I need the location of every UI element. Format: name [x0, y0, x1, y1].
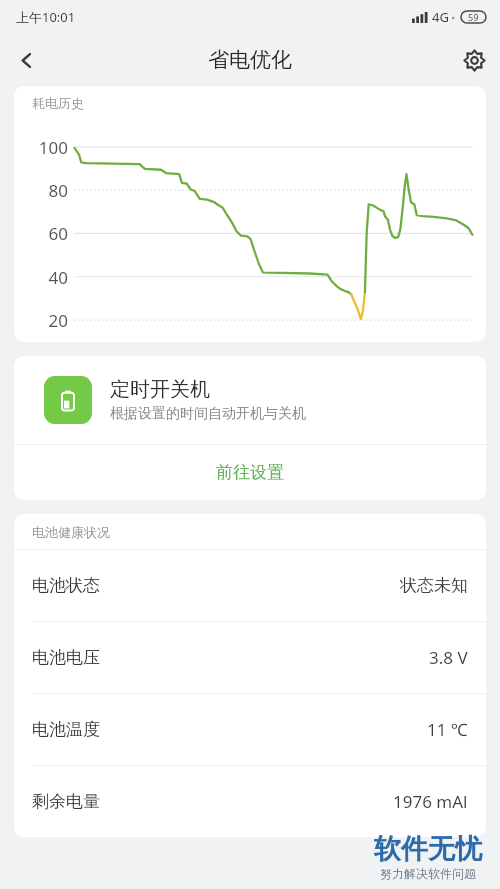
staticText: 59 — [468, 11, 479, 23]
button[interactable]: 剩余电量 — [14, 766, 486, 837]
staticText: 上午10:01 — [16, 8, 76, 26]
button[interactable]: 电池温度 — [14, 694, 486, 766]
staticText: 11 ℃ — [427, 718, 468, 741]
staticText: 1976 mAl — [393, 790, 468, 813]
staticText: 3.8 V — [429, 646, 468, 669]
staticText: 4G — [432, 8, 449, 26]
staticText: 状态未知 — [400, 575, 468, 596]
button[interactable]: 定时开关机 — [14, 356, 486, 444]
staticText: 前往设置 — [216, 462, 284, 483]
staticText: 电池电压 — [32, 647, 100, 668]
staticText: 40 — [24, 266, 68, 288]
staticText: 剩余电量 — [32, 791, 100, 812]
staticText: 60 — [24, 222, 68, 244]
button[interactable]: 电池状态 — [14, 550, 486, 622]
button[interactable]: Settings — [448, 34, 500, 86]
staticText: 软件无忧 — [374, 832, 482, 866]
staticText: 定时开关机 — [110, 377, 210, 402]
staticText: 耗电历史 — [32, 95, 84, 111]
staticText: 根据设置的时间自动开机与关机 — [110, 405, 306, 423]
staticText: 努力解决软件问题 — [380, 866, 476, 881]
button[interactable]: 前往设置 — [14, 445, 486, 500]
staticText: 电池温度 — [32, 719, 100, 740]
staticText: 电池状态 — [32, 575, 100, 596]
staticText: 省电优化 — [208, 47, 292, 73]
staticText: 80 — [24, 179, 68, 201]
staticText: 100 — [24, 136, 68, 158]
staticText: 20 — [24, 309, 68, 331]
staticText: 电池健康状况 — [32, 524, 110, 540]
button[interactable]: Back — [0, 34, 52, 86]
button[interactable]: 电池电压 — [14, 622, 486, 694]
